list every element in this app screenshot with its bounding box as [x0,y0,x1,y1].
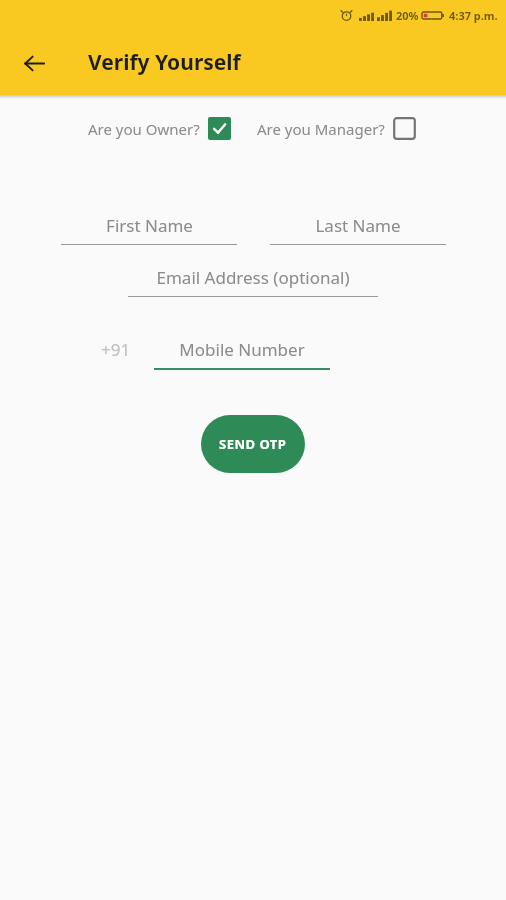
button[interactable]: Mobile Number [154,338,330,370]
button[interactable]: Back [10,39,58,87]
button[interactable]: +91 [101,338,131,361]
staticText: Are you Manager? [257,119,385,139]
button[interactable]: Are you Owner? [88,117,231,140]
staticText: Are you Owner? [88,119,200,139]
staticText: Last Name [315,214,401,237]
staticText: First Name [106,214,193,237]
staticText: SEND OTP [219,435,287,453]
staticText: Mobile Number [179,338,305,361]
button[interactable]: Email Address (optional) [128,266,378,297]
button[interactable]: Last Name [270,214,446,245]
button[interactable]: First Name [61,214,237,245]
staticText: 20% [396,8,419,23]
button[interactable]: SEND OTP [201,415,305,473]
staticText: Email Address (optional) [156,266,350,289]
staticText: 4:37 p.m. [449,8,498,23]
staticText: Verify Yourself [88,48,241,77]
button[interactable]: Are you Manager? [257,117,416,140]
